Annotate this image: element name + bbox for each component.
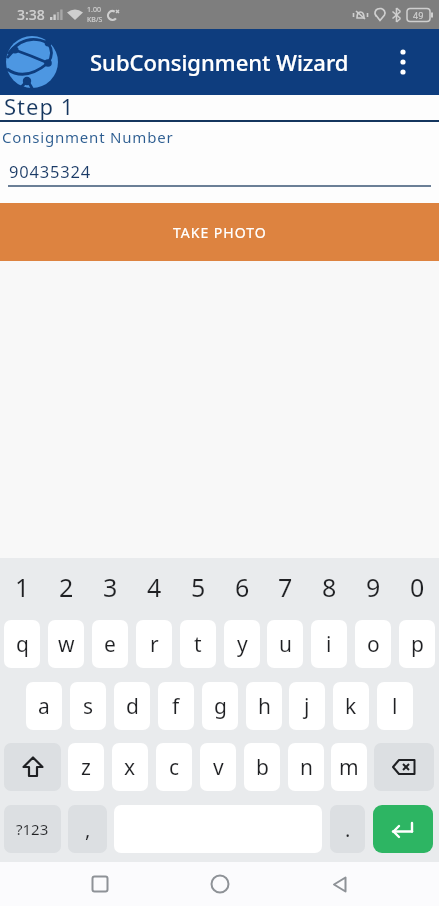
button[interactable]: l <box>377 682 413 730</box>
staticText: 4 <box>147 570 162 604</box>
staticText: . <box>345 816 351 843</box>
staticText: KB/S <box>87 15 103 25</box>
button[interactable]: 8 <box>311 562 347 612</box>
button[interactable]: q <box>4 620 40 668</box>
staticText: r <box>150 630 159 659</box>
button[interactable]: c <box>156 743 192 791</box>
button[interactable]: , <box>68 805 107 853</box>
button[interactable] <box>78 862 122 906</box>
button[interactable]: 3 <box>92 562 128 612</box>
button[interactable]: x <box>112 743 148 791</box>
button[interactable]: i <box>311 620 347 668</box>
button[interactable]: TAKE PHOTO <box>0 203 439 261</box>
button[interactable]: r <box>136 620 172 668</box>
staticText: m <box>339 753 359 782</box>
button[interactable]: t <box>180 620 216 668</box>
button[interactable] <box>318 862 362 906</box>
button[interactable]: m <box>331 743 367 791</box>
staticText: 5 <box>191 570 206 604</box>
staticText: 2 <box>59 570 74 604</box>
button[interactable]: u <box>267 620 303 668</box>
button[interactable]: h <box>246 682 282 730</box>
button[interactable]: 4 <box>136 562 172 612</box>
staticText: , <box>85 816 91 843</box>
staticText: p <box>411 630 424 659</box>
button[interactable]: 1 <box>4 562 40 612</box>
button[interactable]: o <box>355 620 391 668</box>
button[interactable]: 0 <box>399 562 435 612</box>
staticText: z <box>81 753 91 782</box>
button[interactable]: a <box>26 682 62 730</box>
button[interactable]: n <box>288 743 324 791</box>
staticText: y <box>237 630 248 659</box>
staticText: 1 <box>15 570 30 604</box>
button[interactable]: s <box>70 682 106 730</box>
staticText: 90435324 <box>9 160 91 182</box>
button[interactable]: y <box>224 620 260 668</box>
staticText: ?123 <box>16 819 49 839</box>
button[interactable] <box>4 743 61 791</box>
staticText: 49 <box>413 9 424 21</box>
staticText: a <box>38 692 50 721</box>
button[interactable]: k <box>333 682 369 730</box>
button[interactable]: 5 <box>180 562 216 612</box>
staticText: s <box>83 692 94 721</box>
button[interactable] <box>373 805 433 853</box>
staticText: Step 1 <box>4 91 75 121</box>
button[interactable]: ?123 <box>4 805 61 853</box>
button[interactable]: 7 <box>267 562 303 612</box>
button[interactable]: b <box>244 743 280 791</box>
button[interactable]: z <box>68 743 104 791</box>
staticText: 1.00 <box>87 5 101 15</box>
staticText: x <box>124 753 136 782</box>
staticText: j <box>304 692 310 721</box>
button[interactable]: e <box>92 620 128 668</box>
staticText: 7 <box>278 570 293 604</box>
staticText: d <box>126 692 139 721</box>
staticText: v <box>213 753 224 782</box>
staticText: 0 <box>410 570 425 604</box>
button[interactable] <box>374 743 434 791</box>
button[interactable]: . <box>330 805 365 853</box>
button[interactable]: 90435324 <box>4 153 435 189</box>
staticText: Consignment Number <box>2 127 174 147</box>
staticText: w <box>58 630 75 659</box>
staticText: SubConsignment Wizard <box>90 47 349 77</box>
staticText: k <box>345 692 357 721</box>
staticText: e <box>104 630 116 659</box>
button[interactable]: g <box>202 682 238 730</box>
button[interactable] <box>389 48 417 76</box>
button[interactable]: p <box>399 620 435 668</box>
button[interactable]: w <box>48 620 84 668</box>
button[interactable]: d <box>114 682 150 730</box>
staticText: 6 <box>235 570 250 604</box>
staticText: 3 <box>103 570 118 604</box>
staticText: 9 <box>366 570 381 604</box>
button[interactable]: 9 <box>355 562 391 612</box>
button[interactable] <box>198 862 242 906</box>
staticText: 8 <box>322 570 337 604</box>
staticText: t <box>194 630 202 659</box>
button[interactable]: v <box>200 743 236 791</box>
staticText: b <box>256 753 269 782</box>
button[interactable]: j <box>289 682 325 730</box>
button[interactable]: 6 <box>224 562 260 612</box>
staticText: TAKE PHOTO <box>173 223 267 242</box>
staticText: u <box>279 630 292 659</box>
button[interactable]: f <box>158 682 194 730</box>
staticText: g <box>214 692 227 721</box>
staticText: f <box>172 692 180 721</box>
staticText: o <box>367 630 380 659</box>
staticText: h <box>258 692 271 721</box>
staticText: q <box>16 630 29 659</box>
button[interactable]: 2 <box>48 562 84 612</box>
staticText: 3:38 <box>17 5 45 24</box>
staticText: n <box>300 753 313 782</box>
staticText: l <box>392 692 398 721</box>
staticText: c <box>169 753 180 782</box>
staticText: i <box>326 630 332 659</box>
